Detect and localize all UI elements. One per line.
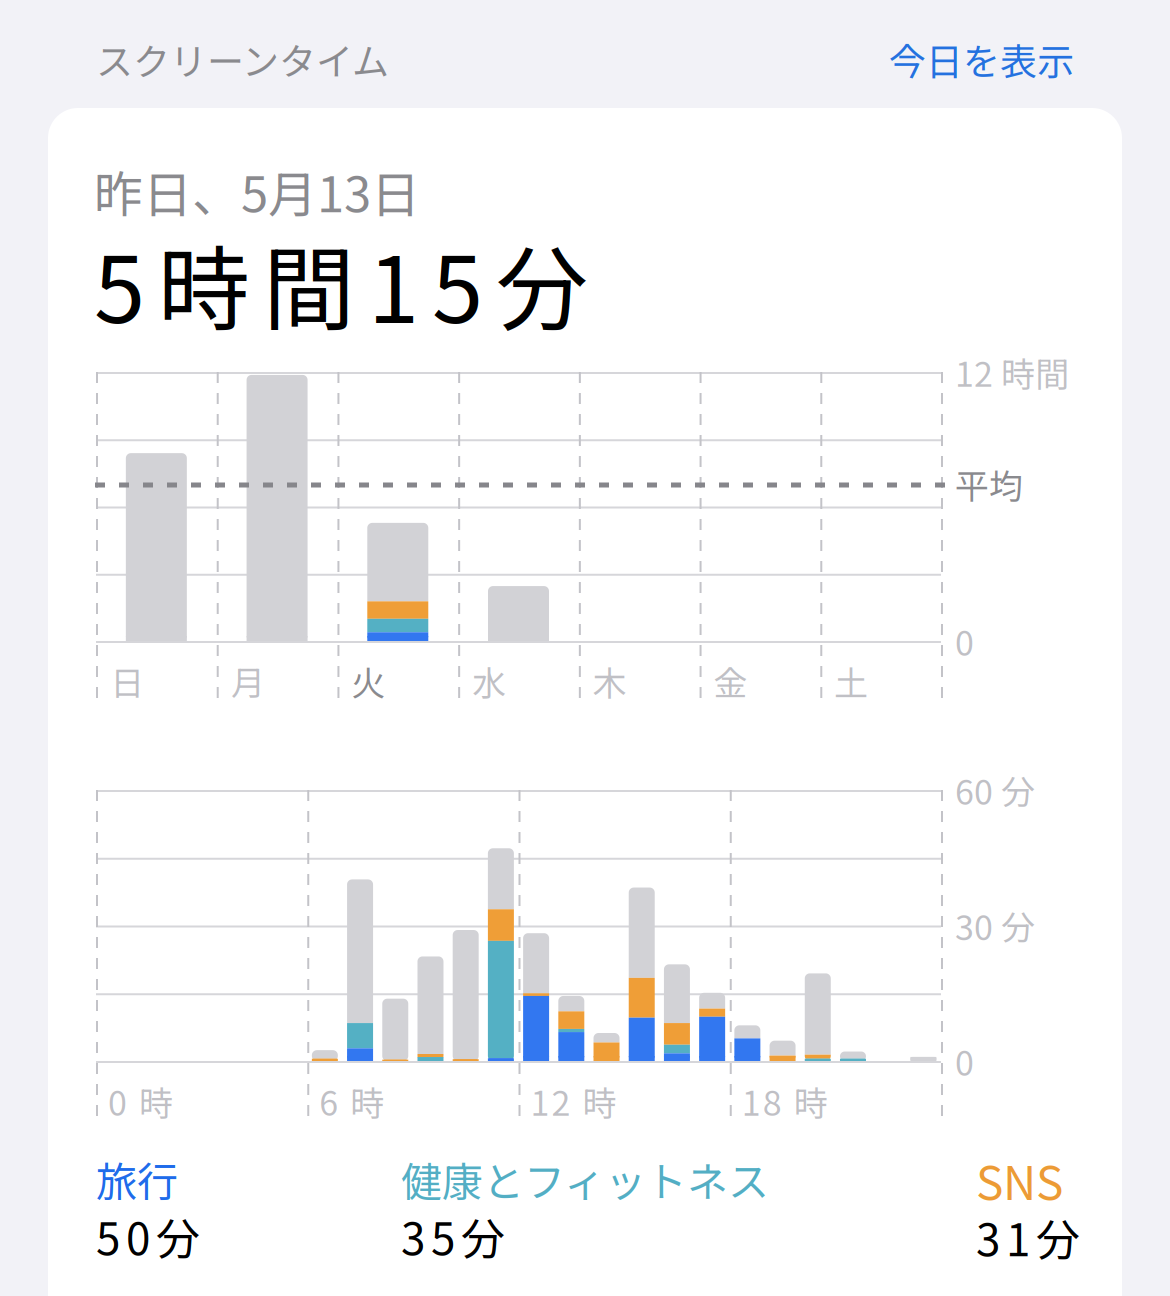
staticText: 土 — [834, 656, 868, 706]
button[interactable]: 旅行 — [96, 1152, 516, 1266]
staticText: SNS — [976, 1147, 1063, 1213]
staticText: 35分 — [401, 1204, 505, 1268]
staticText: スクリーンタイム — [96, 32, 389, 86]
staticText: 12 時間 — [955, 347, 1069, 397]
staticText: 日 — [110, 656, 144, 706]
staticText: 0 時 — [108, 1076, 173, 1126]
staticText: 60 分 — [955, 765, 1035, 815]
staticText: 31分 — [976, 1205, 1080, 1269]
staticText: 水 — [472, 656, 506, 706]
staticText: 今日を表示 — [889, 32, 1074, 86]
button[interactable]: SNS — [976, 1153, 1170, 1267]
staticText: 50分 — [96, 1204, 200, 1268]
button[interactable]: 今日を表示 — [889, 32, 1074, 86]
staticText: 旅行 — [96, 1149, 178, 1209]
staticText: 18 時 — [742, 1076, 828, 1126]
staticText: 12 時 — [530, 1076, 616, 1126]
staticText: 30 分 — [955, 901, 1035, 950]
staticText: 0 — [955, 616, 974, 666]
staticText: 月 — [231, 656, 265, 706]
staticText: 木 — [593, 656, 627, 706]
staticText: 6 時 — [319, 1076, 384, 1126]
staticText: 0 — [955, 1036, 974, 1086]
staticText: 昨日、5月13日 — [94, 155, 420, 226]
staticText: 平均 — [955, 459, 1023, 509]
staticText: 金 — [714, 656, 748, 706]
staticText: 5時間15分 — [94, 216, 588, 350]
staticText: 健康とフィットネス — [401, 1149, 769, 1209]
staticText: 火 — [351, 656, 385, 706]
button[interactable]: 健康とフィットネス — [401, 1152, 821, 1266]
